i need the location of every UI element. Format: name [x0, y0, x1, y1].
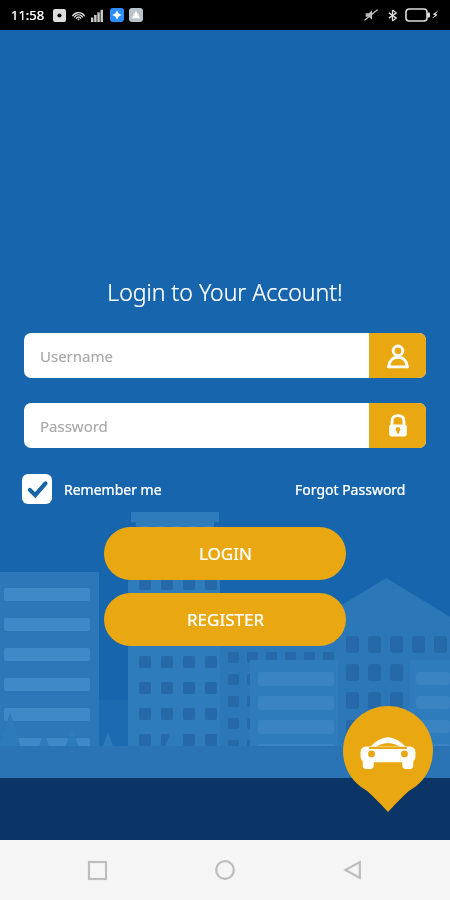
button[interactable]: Remember me	[22, 472, 162, 506]
staticText: Password	[40, 416, 108, 436]
button[interactable]: Recent apps	[66, 840, 128, 900]
button[interactable]: Back	[322, 840, 384, 900]
button[interactable]: Forgot Password	[291, 476, 410, 503]
staticText: Username	[40, 346, 113, 366]
staticText: LOGIN	[199, 542, 252, 565]
button[interactable]: Password	[24, 403, 426, 448]
staticText: REGISTER	[187, 608, 264, 631]
staticText: Login to Your Account!	[107, 276, 343, 307]
staticText: ⚡	[432, 10, 439, 20]
button[interactable]: Home	[194, 840, 256, 900]
button[interactable]: LOGIN	[104, 527, 346, 580]
staticText: Remember me	[64, 480, 162, 499]
staticText: Forgot Password	[295, 480, 406, 499]
button[interactable]: REGISTER	[104, 593, 346, 646]
button[interactable]: Find a car nearby	[343, 706, 433, 812]
staticText: 11:58	[11, 6, 45, 24]
button[interactable]: Username	[24, 333, 426, 378]
